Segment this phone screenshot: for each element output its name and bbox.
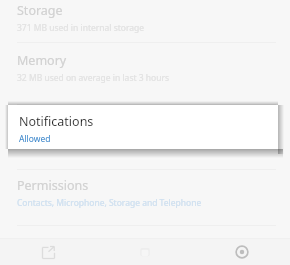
staticText: Contacts, Microphone, Storage and Teleph… xyxy=(17,197,202,209)
button[interactable]: Set as default xyxy=(0,226,290,265)
staticText: Memory xyxy=(17,52,67,69)
button[interactable]: Memory xyxy=(0,43,290,92)
staticText: Allowed xyxy=(19,133,51,145)
button[interactable]: Back xyxy=(193,239,290,265)
button[interactable]: Notifications xyxy=(8,105,278,149)
button[interactable]: Recents xyxy=(0,239,96,265)
staticText: 371 MB used in internal storage xyxy=(17,22,145,34)
staticText: 32 MB used on average in last 3 hours xyxy=(17,72,170,84)
staticText: Notifications xyxy=(19,113,94,130)
button[interactable]: Permissions xyxy=(0,170,290,217)
button[interactable]: Storage xyxy=(0,0,290,42)
staticText: Permissions xyxy=(17,177,89,194)
staticText: None set as default xyxy=(17,255,95,257)
staticText: Set as default xyxy=(17,235,97,252)
staticText: Storage xyxy=(17,2,63,19)
staticText: App settings xyxy=(17,112,74,125)
